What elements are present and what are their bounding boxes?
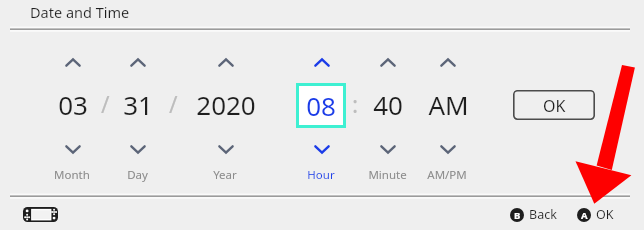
button[interactable]: B (510, 206, 557, 223)
staticText: : (352, 88, 359, 119)
button[interactable]: Minute (347, 165, 427, 184)
button[interactable]: OK (513, 90, 595, 120)
staticText: Minute (368, 167, 407, 183)
staticText: 40 (373, 87, 403, 122)
button[interactable]: 08 (296, 83, 346, 128)
button[interactable]: Increase Hour (305, 51, 339, 73)
staticText: OK (543, 95, 566, 117)
button[interactable]: AM/PM (407, 165, 487, 184)
staticText: Date and Time (30, 2, 130, 22)
button[interactable]: Increase AM/PM (431, 51, 465, 73)
staticText: Day (127, 167, 148, 183)
button[interactable]: Increase Year (209, 51, 243, 73)
staticText: AM/PM (427, 167, 467, 183)
button[interactable]: Console (23, 207, 58, 222)
button[interactable]: Hour (281, 165, 361, 184)
staticText: / (169, 88, 178, 119)
button[interactable]: Decrease Year (209, 138, 243, 160)
button[interactable]: Decrease Minute (371, 138, 405, 160)
button[interactable]: Month (32, 165, 112, 184)
staticText: Back (529, 206, 557, 223)
staticText: 03 (58, 87, 88, 122)
staticText: B (514, 209, 521, 222)
button[interactable]: A (577, 206, 614, 223)
staticText: Hour (307, 167, 335, 183)
staticText: / (101, 88, 110, 119)
button[interactable]: Increase Day (121, 51, 155, 73)
staticText: Month (54, 167, 90, 183)
button[interactable]: Decrease Day (121, 138, 155, 160)
staticText: Year (213, 167, 237, 183)
button[interactable]: Decrease Hour (305, 138, 339, 160)
staticText: 31 (123, 87, 153, 122)
button[interactable]: Increase Month (56, 51, 90, 73)
staticText: 2020 (196, 87, 256, 122)
button[interactable]: Year (185, 165, 265, 184)
staticText: OK (596, 206, 614, 223)
button[interactable]: Decrease Month (56, 138, 90, 160)
staticText: 08 (306, 88, 336, 123)
staticText: AM (428, 87, 469, 122)
button[interactable]: Increase Minute (371, 51, 405, 73)
button[interactable]: Decrease AM/PM (431, 138, 465, 160)
button[interactable]: Day (97, 165, 177, 184)
staticText: A (581, 209, 588, 222)
